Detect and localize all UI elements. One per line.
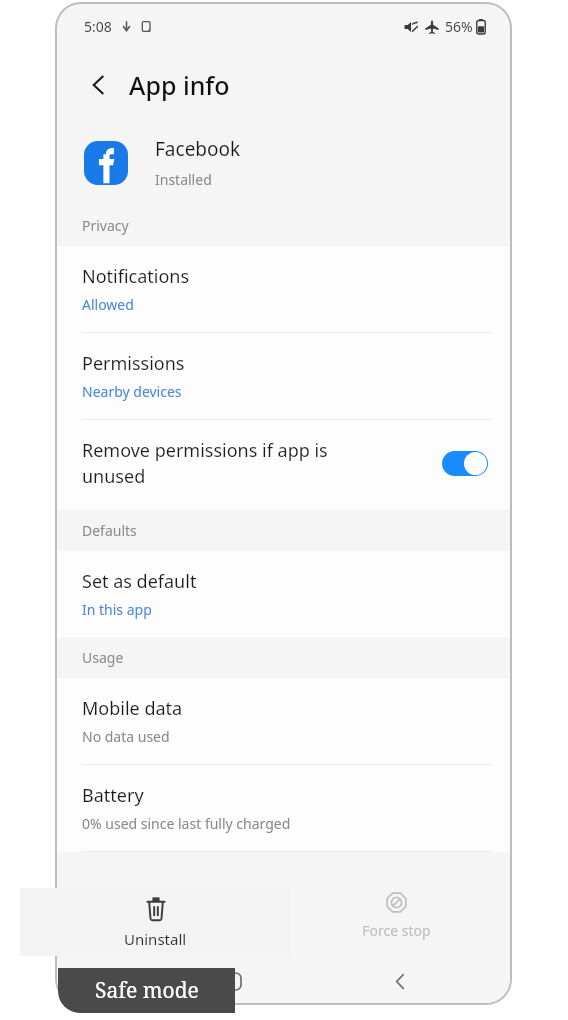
button[interactable]: Battery bbox=[57, 765, 510, 851]
staticText: No data used bbox=[82, 727, 170, 746]
staticText: Installed bbox=[155, 170, 212, 189]
staticText: Defaults bbox=[82, 521, 137, 540]
button[interactable]: Force stop bbox=[283, 873, 510, 958]
staticText: Battery bbox=[82, 783, 144, 808]
staticText: Set as default bbox=[82, 569, 197, 594]
button[interactable]: Remove permissions if app is unused bbox=[57, 420, 510, 510]
staticText: Remove permissions if app is unused bbox=[82, 438, 434, 488]
staticText: Nearby devices bbox=[82, 382, 182, 401]
staticText: Uninstall bbox=[124, 929, 187, 949]
button[interactable]: Back bbox=[79, 65, 119, 105]
staticText: 0% used since last fully charged bbox=[82, 814, 291, 833]
staticText: Mobile data bbox=[82, 696, 183, 721]
staticText: Force stop bbox=[362, 921, 431, 940]
staticText: In this app bbox=[82, 600, 152, 619]
staticText: Safe mode bbox=[95, 976, 199, 1005]
staticText: Notifications bbox=[82, 264, 190, 289]
staticText: Facebook bbox=[155, 136, 241, 162]
staticText: Privacy bbox=[82, 216, 129, 235]
button[interactable]: Permissions bbox=[57, 333, 510, 419]
button[interactable]: Uninstall bbox=[20, 888, 290, 956]
button[interactable]: Back bbox=[378, 959, 422, 1003]
button[interactable]: Notifications bbox=[57, 246, 510, 332]
staticText: 56% bbox=[445, 17, 473, 36]
button[interactable]: Set as default bbox=[57, 551, 510, 637]
staticText: App info bbox=[129, 68, 230, 102]
staticText: 5:08 bbox=[84, 17, 112, 36]
button[interactable]: Mobile data bbox=[57, 678, 510, 764]
button[interactable]: Home bbox=[210, 959, 254, 1003]
staticText: Allowed bbox=[82, 295, 134, 314]
staticText: Permissions bbox=[82, 351, 185, 376]
staticText: Usage bbox=[82, 648, 124, 667]
